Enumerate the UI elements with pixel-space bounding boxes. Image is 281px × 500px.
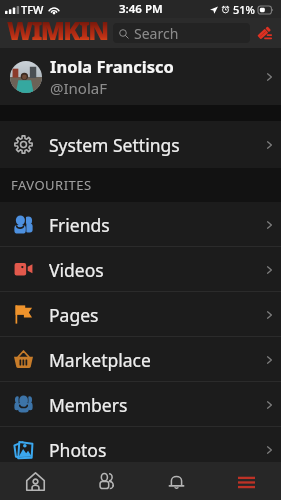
staticText: Inola Francisco <box>50 55 174 77</box>
staticText: TFW <box>21 2 44 17</box>
staticText: WIMKIN <box>7 13 108 43</box>
button[interactable]: Marketplace <box>0 337 281 382</box>
staticText: Search <box>134 24 179 43</box>
staticText: Pages <box>49 303 99 327</box>
button[interactable]: Notifications <box>141 462 211 500</box>
staticText: 3:46 PM <box>119 1 163 17</box>
staticText: Marketplace <box>49 348 151 372</box>
button[interactable]: Videos <box>0 247 281 292</box>
button[interactable]: Menu <box>211 462 281 500</box>
button[interactable]: Create post <box>254 22 276 44</box>
staticText: Videos <box>49 258 104 282</box>
staticText: Photos <box>49 438 107 462</box>
button[interactable]: Friends <box>71 462 141 500</box>
staticText: Members <box>49 393 128 417</box>
button[interactable]: System Settings <box>0 121 281 168</box>
button[interactable]: Home <box>0 462 71 500</box>
staticText: Friends <box>49 213 110 237</box>
button[interactable]: Friends <box>0 202 281 247</box>
staticText: FAVOURITES <box>11 176 92 194</box>
button[interactable]: Members <box>0 382 281 427</box>
button[interactable]: Search <box>113 23 250 43</box>
staticText: @InolaF <box>50 78 107 98</box>
button[interactable]: Inola Francisco <box>0 48 281 105</box>
staticText: 51% <box>233 2 255 17</box>
button[interactable]: Photos <box>0 432 281 462</box>
staticText: System Settings <box>49 133 180 157</box>
button[interactable]: Pages <box>0 292 281 337</box>
